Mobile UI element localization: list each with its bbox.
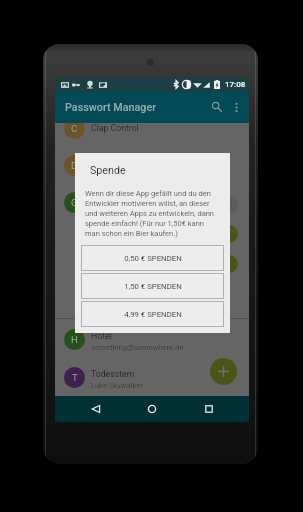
button[interactable]: D — [55, 147, 249, 184]
button[interactable]: More options — [225, 96, 247, 118]
staticText: Wenn dir diese App gefällt und du den En… — [85, 189, 216, 238]
button[interactable]: Search — [205, 95, 227, 117]
staticText: 4,99 € SPENDEN — [124, 310, 182, 319]
staticText: Dropbox — [91, 157, 124, 167]
staticText: 0,50 € SPENDEN — [124, 254, 182, 263]
button[interactable]: Recents — [193, 396, 225, 422]
button[interactable]: 4,99 € SPENDEN — [81, 301, 224, 327]
staticText: H — [71, 334, 78, 345]
staticText: Hotel — [91, 331, 112, 341]
button[interactable]: G — [55, 184, 249, 221]
staticText: max.mustermann@web.de — [91, 169, 182, 178]
button[interactable]: 1,50 € SPENDEN — [81, 273, 224, 299]
staticText: 1,50 € SPENDEN — [124, 282, 182, 291]
staticText: Todesstern — [91, 369, 135, 379]
button[interactable]: Back — [80, 396, 112, 422]
button[interactable]: C — [55, 110, 249, 147]
staticText: G — [71, 197, 78, 208]
button[interactable]: H — [55, 321, 249, 358]
staticText: T — [72, 372, 78, 383]
button[interactable]: 0,50 € SPENDEN — [81, 245, 224, 271]
staticText: Clap Control — [91, 123, 139, 133]
staticText: something@somewhere.de — [91, 343, 184, 352]
staticText: Passwort Manager — [65, 101, 157, 114]
staticText: D — [71, 160, 78, 171]
staticText: 17:08 — [225, 80, 246, 89]
staticText: Luke Skywalker — [91, 381, 143, 390]
staticText: max.mustermann — [91, 206, 151, 215]
button[interactable]: Add entry — [210, 358, 237, 385]
button[interactable]: Home — [136, 396, 168, 422]
button[interactable]: T — [55, 359, 249, 396]
staticText: C — [71, 123, 78, 134]
staticText: Spende — [90, 164, 126, 177]
staticText: Gmail — [91, 194, 114, 204]
